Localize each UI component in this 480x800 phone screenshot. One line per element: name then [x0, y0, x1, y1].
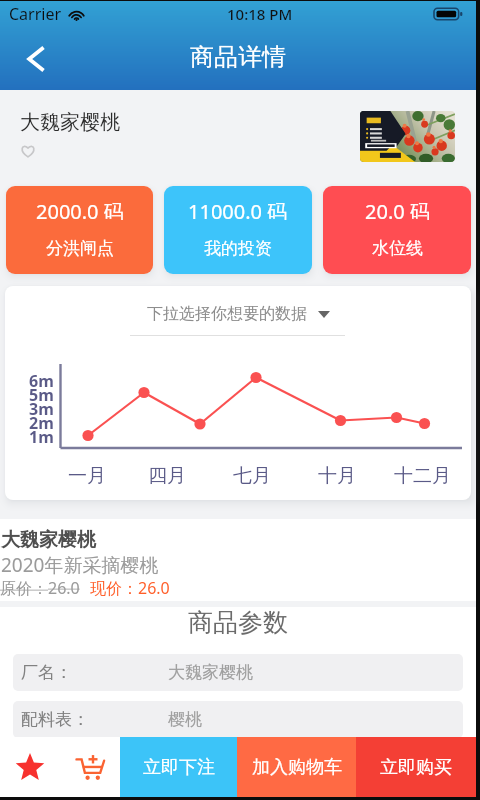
- button[interactable]: 厂名：: [13, 654, 463, 691]
- button[interactable]: 配料表：: [13, 701, 463, 738]
- staticText: 大魏家樱桃: [20, 110, 120, 135]
- staticText: 大魏家樱桃: [1, 528, 96, 552]
- staticText: 十二月: [394, 464, 451, 488]
- button[interactable]: 20.0 码: [323, 186, 471, 274]
- staticText: 立即购买: [380, 756, 452, 779]
- button[interactable]: [360, 111, 455, 162]
- staticText: 6m: [29, 370, 54, 388]
- staticText: 樱桃: [168, 709, 202, 730]
- button[interactable]: 下拉选择你想要的数据: [147, 304, 330, 324]
- staticText: 一月: [68, 464, 106, 488]
- staticText: 四月: [148, 464, 186, 488]
- staticText: 原价：26.0: [0, 577, 80, 599]
- button[interactable]: Favorite: [0, 737, 60, 797]
- staticText: 5m: [29, 384, 54, 402]
- button[interactable]: 11000.0 码: [164, 186, 312, 274]
- staticText: 2020年新采摘樱桃: [1, 552, 159, 578]
- staticText: 2000.0 码: [36, 198, 124, 220]
- staticText: 10:18 PM: [227, 4, 293, 24]
- staticText: 十月: [318, 464, 356, 488]
- staticText: 七月: [233, 464, 271, 488]
- staticText: 我的投资: [204, 238, 272, 259]
- staticText: 商品参数: [0, 607, 476, 638]
- button[interactable]: 立即下注: [120, 737, 237, 797]
- button[interactable]: 立即购买: [356, 737, 476, 797]
- staticText: 配料表：: [21, 709, 89, 730]
- staticText: 大魏家樱桃: [168, 662, 253, 683]
- button[interactable]: Add to cart: [60, 737, 120, 797]
- staticText: 11000.0 码: [188, 198, 288, 220]
- staticText: 商品详情: [190, 42, 286, 72]
- button[interactable]: 加入购物车: [237, 737, 356, 797]
- staticText: 1m: [29, 426, 54, 444]
- staticText: 2m: [29, 412, 54, 430]
- staticText: 3m: [29, 398, 54, 416]
- staticText: 下拉选择你想要的数据: [147, 304, 307, 324]
- staticText: 厂名：: [21, 662, 72, 683]
- staticText: 分洪闸点: [46, 238, 114, 259]
- staticText: 加入购物车: [252, 756, 342, 779]
- staticText: 水位线: [372, 238, 423, 259]
- staticText: 立即下注: [143, 756, 215, 779]
- staticText: 20.0 码: [365, 198, 430, 220]
- staticText: Carrier: [9, 3, 62, 25]
- button[interactable]: Back: [14, 37, 58, 81]
- button[interactable]: Favorite: [18, 142, 38, 160]
- button[interactable]: 2000.0 码: [6, 186, 153, 274]
- staticText: 现价：26.0: [90, 577, 170, 599]
